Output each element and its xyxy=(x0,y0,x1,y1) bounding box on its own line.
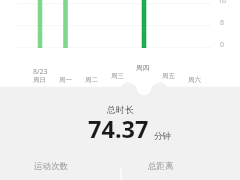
button[interactable]: 运动次数 xyxy=(34,161,68,180)
button[interactable]: 总距离 xyxy=(148,161,198,180)
staticText: 8 xyxy=(220,18,225,28)
staticText: 分钟 xyxy=(154,131,171,142)
button[interactable]: 周一 xyxy=(59,76,72,84)
button[interactable]: 周三 xyxy=(111,72,124,80)
staticText: 8/23 xyxy=(33,67,48,77)
staticText: 总距离 xyxy=(148,161,174,172)
button[interactable]: 周四 xyxy=(136,64,149,72)
staticText: 74.37 xyxy=(88,113,149,145)
button[interactable]: 周五 xyxy=(162,72,175,80)
button[interactable]: 周二 xyxy=(85,76,98,84)
staticText: 运动次数 xyxy=(34,161,68,172)
staticText: 总时长 xyxy=(107,104,134,115)
staticText: 16 xyxy=(218,0,227,6)
button[interactable]: 周日 xyxy=(33,76,46,84)
button[interactable]: 周六 xyxy=(188,76,201,84)
staticText: 0 xyxy=(220,40,225,50)
